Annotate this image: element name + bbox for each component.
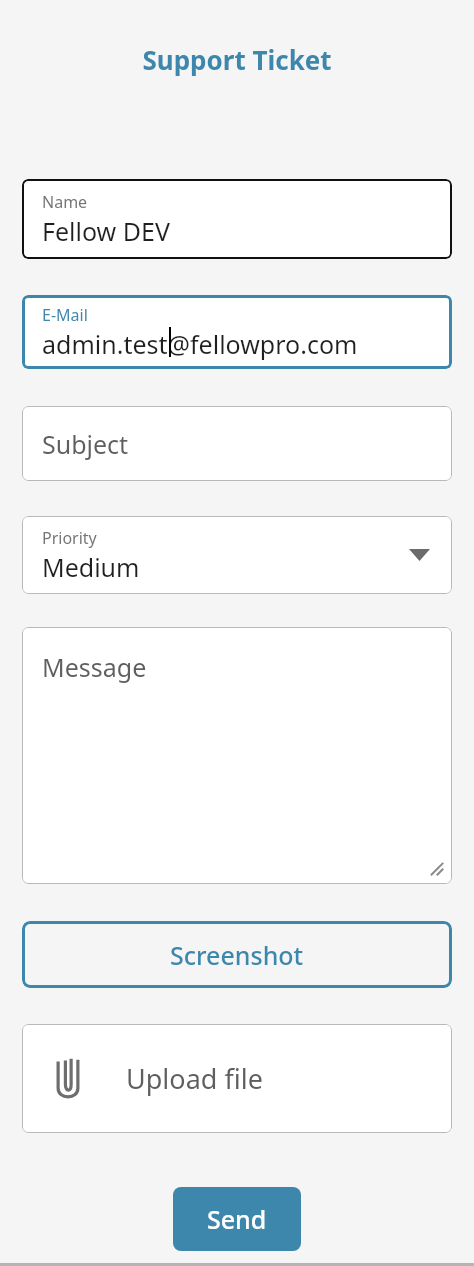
button[interactable]: E-Mail bbox=[22, 295, 452, 369]
staticText: Medium bbox=[42, 550, 140, 584]
other: Open priority dropdown bbox=[409, 549, 430, 561]
staticText: Subject bbox=[42, 427, 129, 461]
button[interactable]: Upload file bbox=[22, 1024, 452, 1133]
button[interactable]: Subject bbox=[22, 406, 452, 481]
staticText: Name bbox=[42, 191, 88, 213]
staticText: admin.test@fellowpro.com bbox=[42, 327, 358, 361]
staticText: E-Mail bbox=[42, 304, 88, 326]
staticText: Fellow DEV bbox=[42, 214, 170, 248]
staticText: Message bbox=[42, 650, 147, 684]
button[interactable]: Priority bbox=[22, 516, 452, 594]
staticText: Support Ticket bbox=[0, 42, 474, 77]
staticText: Upload file bbox=[126, 1060, 263, 1097]
button[interactable]: Send bbox=[173, 1187, 301, 1251]
staticText: Send bbox=[207, 1202, 267, 1236]
staticText: Priority bbox=[42, 527, 97, 549]
staticText: Screenshot bbox=[170, 938, 304, 972]
button[interactable]: Message bbox=[22, 627, 452, 884]
button[interactable]: Screenshot bbox=[22, 921, 452, 988]
button[interactable]: Name bbox=[22, 179, 452, 259]
